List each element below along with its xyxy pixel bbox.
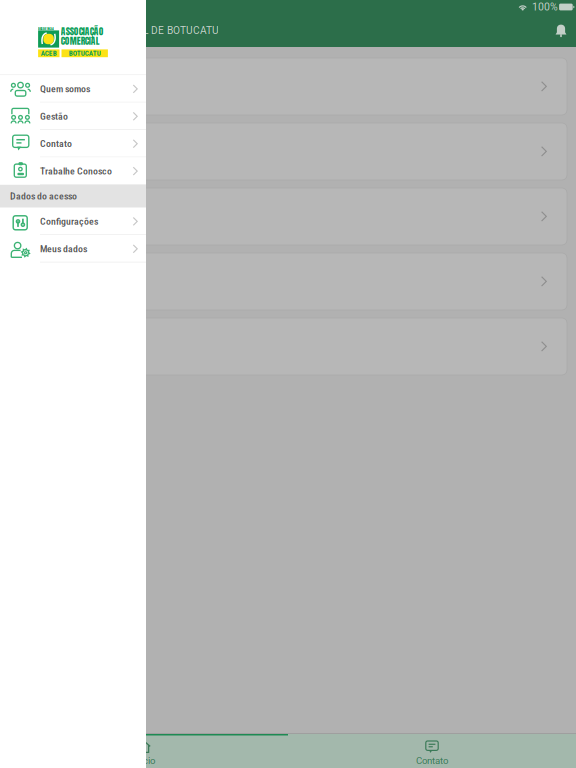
staticText: DESDE 1934 [38, 26, 54, 31]
button[interactable]: Trabalhe Conosco [0, 157, 146, 185]
staticText: ASSOCIAÇÃO [61, 24, 104, 38]
staticText: BOTUCATU [69, 49, 101, 57]
staticText: 100% [532, 1, 558, 13]
staticText: Quem somos [40, 83, 90, 95]
staticText: Dados do acesso [10, 190, 77, 202]
staticText: ACEB [41, 49, 57, 57]
button[interactable]: Contato [288, 734, 576, 768]
button[interactable]: Configurações [0, 208, 146, 235]
button[interactable]: Quem somos [0, 75, 146, 103]
staticText: Gestão [40, 110, 68, 122]
staticText: ASSOCIAÇÃO COMERCIAL DE BOTUCATU [24, 25, 219, 36]
staticText: Início [133, 755, 155, 766]
staticText: COMERCIAL [61, 34, 100, 48]
staticText: Contato [40, 138, 72, 149]
button[interactable]: Início [0, 734, 288, 768]
staticText: Contato [416, 755, 448, 766]
button[interactable]: Contato [0, 130, 146, 157]
staticText: Trabalhe Conosco [40, 165, 112, 177]
staticText: Meus dados [40, 243, 87, 255]
button[interactable]: Meus dados [0, 235, 146, 262]
button[interactable]: Notificações [546, 14, 576, 47]
button[interactable]: Gestão [0, 103, 146, 130]
staticText: Configurações [40, 216, 98, 227]
